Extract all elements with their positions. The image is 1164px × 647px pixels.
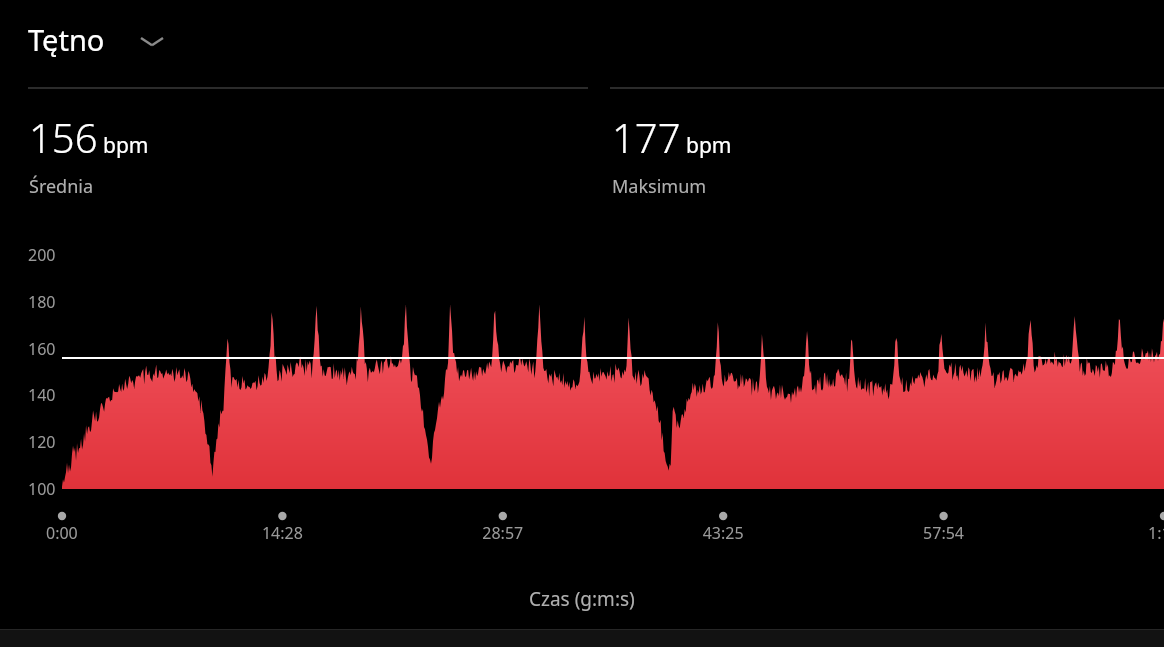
button[interactable]: Tętno, zmień metrykę [16,8,176,66]
